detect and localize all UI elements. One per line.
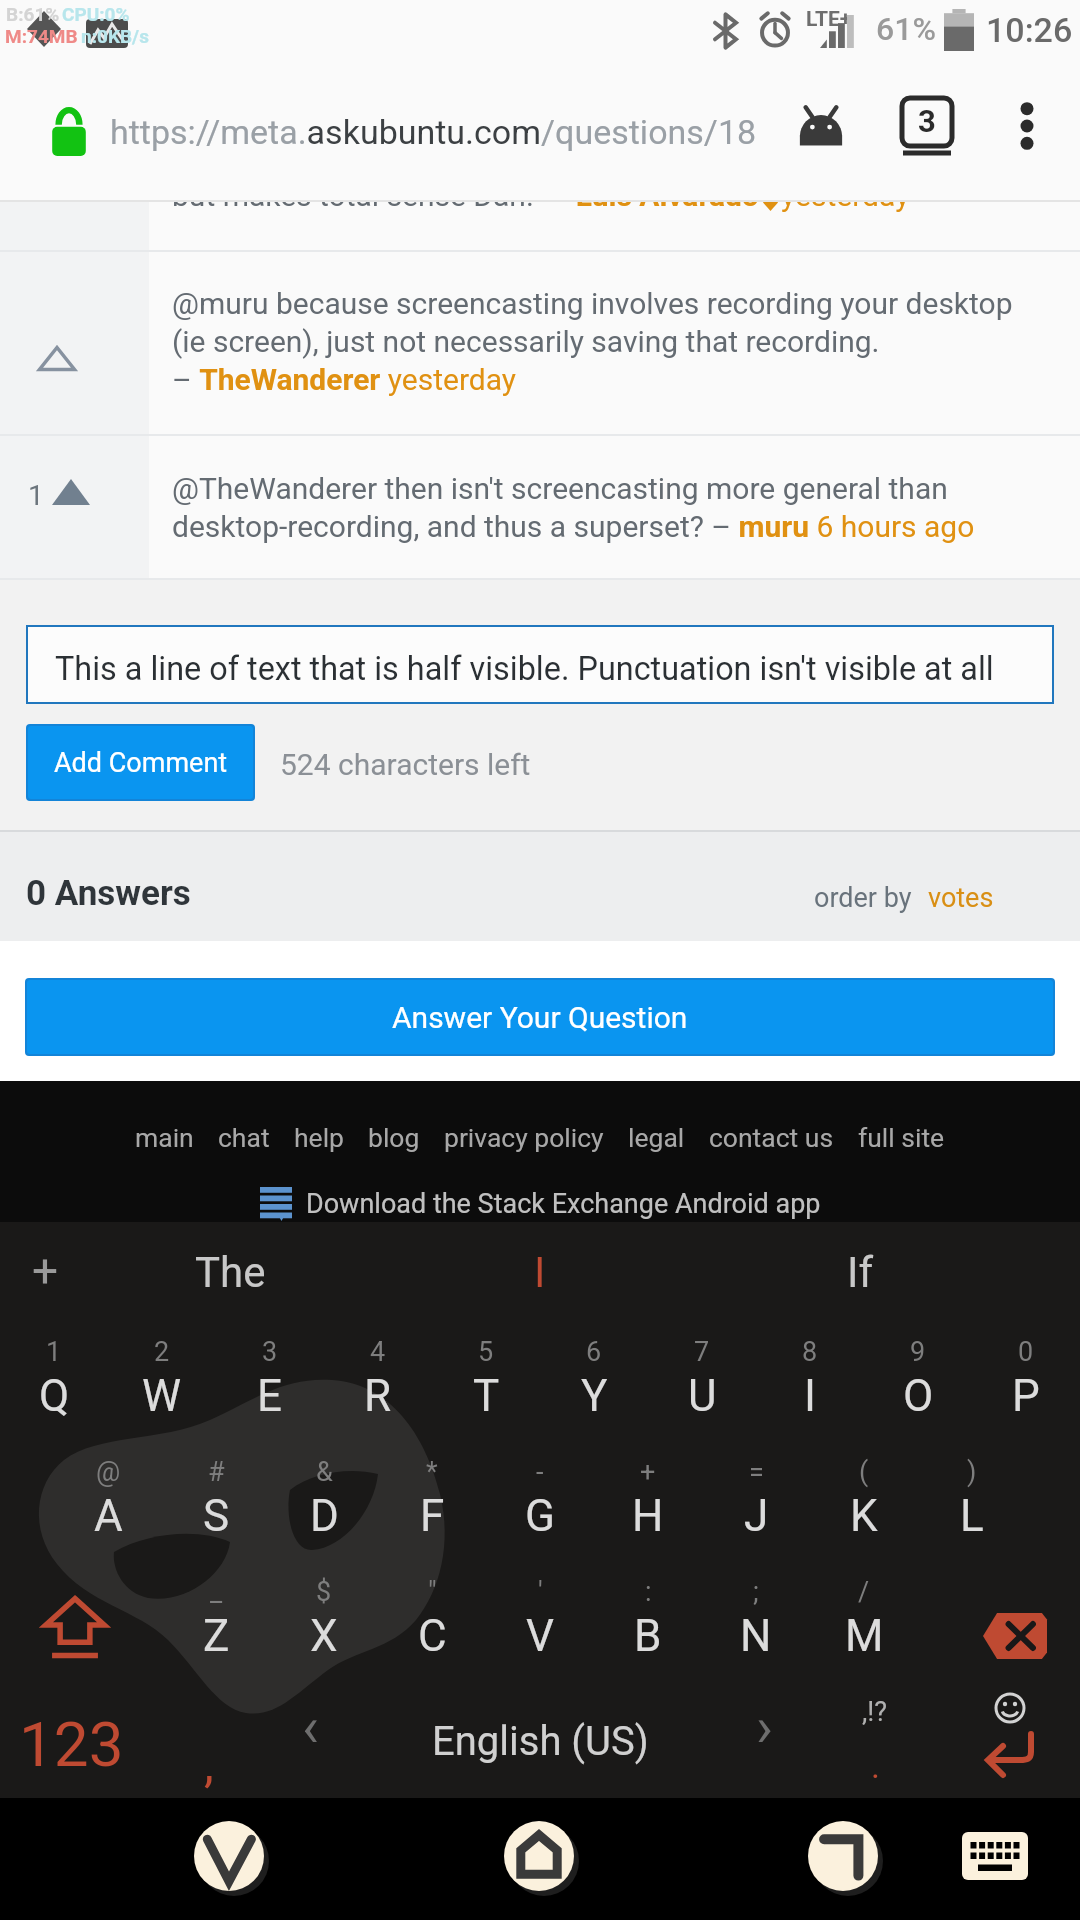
button[interactable]: 1 [0, 1330, 108, 1448]
staticText: I [804, 1370, 816, 1422]
staticText: Answer Your Question [392, 1000, 688, 1035]
staticText: - [536, 1456, 544, 1488]
staticText: K [850, 1490, 878, 1542]
button[interactable]: help [282, 1122, 356, 1153]
staticText: legal [628, 1122, 685, 1153]
button[interactable]: Backspace [945, 1570, 1080, 1688]
button[interactable]: : [594, 1570, 702, 1688]
button[interactable]: Download the Stack Exchange Android app [306, 1188, 821, 1220]
staticText: ( [859, 1456, 869, 1488]
button[interactable]: Tabs [887, 86, 967, 166]
staticText: https://meta.askubuntu.com/questions/18 [110, 112, 770, 152]
button[interactable]: @muru because screencasting involves rec… [0, 251, 1080, 435]
button[interactable]: ,!? [810, 1684, 940, 1798]
staticText: 524 characters left [280, 747, 531, 782]
button[interactable]: Answer Your Question [27, 980, 1053, 1054]
button[interactable]: Add Comment [28, 726, 253, 799]
staticText: ,!? [862, 1696, 888, 1728]
button[interactable]: ; [702, 1570, 810, 1688]
staticText: D [310, 1490, 339, 1542]
button[interactable]: Home [487, 1804, 591, 1908]
button[interactable]: 4 [324, 1330, 432, 1448]
button[interactable]: " [378, 1570, 486, 1688]
button[interactable]: legal [616, 1122, 697, 1153]
staticText: V [526, 1610, 555, 1662]
button[interactable]: - [486, 1450, 594, 1568]
staticText: @muru because screencasting involves rec… [172, 286, 1030, 397]
button[interactable]: = [702, 1450, 810, 1568]
staticText: H [632, 1490, 664, 1542]
button[interactable]: but makes total sense Dan. – Luis Alvara… [0, 202, 1080, 251]
button[interactable]: / [810, 1570, 918, 1688]
staticText: = [749, 1456, 764, 1488]
staticText: F [420, 1490, 445, 1542]
button[interactable]: ' [486, 1570, 594, 1688]
staticText: M:74MB [5, 25, 78, 47]
button[interactable]: More options [987, 86, 1067, 166]
staticText: J [744, 1490, 769, 1542]
button[interactable]: votes [928, 882, 994, 914]
button[interactable]: English (US) [270, 1684, 810, 1798]
button[interactable]: 5 [432, 1330, 540, 1448]
staticText: The [195, 1248, 266, 1297]
button[interactable]: Show keyboard [930, 1820, 1060, 1892]
button[interactable]: chat [206, 1122, 282, 1153]
staticText: + [640, 1456, 656, 1488]
button[interactable]: blog [356, 1122, 432, 1153]
button[interactable]: The [120, 1232, 340, 1312]
staticText: M [845, 1610, 884, 1662]
staticText: 6 [586, 1336, 602, 1368]
button[interactable]: Enter [960, 1684, 1080, 1798]
button[interactable]: 8 [756, 1330, 864, 1448]
button[interactable]: ( [810, 1450, 918, 1568]
staticText: I [534, 1248, 546, 1297]
button[interactable]: @ [54, 1450, 162, 1568]
button[interactable]: 3 [216, 1330, 324, 1448]
button[interactable]: main [123, 1122, 206, 1153]
button[interactable]: _ [162, 1570, 270, 1688]
button[interactable]: Android app [781, 88, 861, 168]
staticText: $ [316, 1576, 332, 1608]
staticText: This a line of text that is half visible… [55, 650, 994, 682]
button[interactable]: If [770, 1232, 950, 1312]
button[interactable]: , [152, 1684, 262, 1798]
button[interactable]: full site [846, 1122, 957, 1153]
staticText: E [257, 1370, 283, 1422]
button[interactable]: * [378, 1450, 486, 1568]
button[interactable]: I [450, 1232, 630, 1312]
staticText: S [203, 1490, 230, 1542]
staticText: n:0KB/s [81, 25, 149, 47]
button[interactable]: contact us [697, 1122, 846, 1153]
button[interactable]: 7 [648, 1330, 756, 1448]
button[interactable]: 0 [972, 1330, 1080, 1448]
button[interactable]: privacy policy [432, 1122, 616, 1153]
staticText: # [208, 1456, 225, 1488]
button[interactable]: 6 [540, 1330, 648, 1448]
button[interactable]: Recents [791, 1804, 895, 1908]
staticText: @ [96, 1456, 121, 1488]
button[interactable]: This a line of text that is half visible… [26, 625, 1054, 704]
staticText: Z [203, 1610, 230, 1662]
button[interactable]: # [162, 1450, 270, 1568]
button[interactable]: Shift [0, 1570, 150, 1688]
staticText: privacy policy [444, 1122, 604, 1153]
staticText: 1 [28, 479, 44, 512]
button[interactable]: + [594, 1450, 702, 1568]
button[interactable]: 2 [108, 1330, 216, 1448]
button[interactable]: & [270, 1450, 378, 1568]
staticText: * [426, 1456, 438, 1488]
button[interactable]: ) [918, 1450, 1026, 1568]
staticText: 9 [910, 1336, 926, 1368]
button[interactable]: $ [270, 1570, 378, 1688]
button[interactable]: 1 [0, 435, 1080, 580]
button[interactable]: Back [177, 1804, 281, 1908]
staticText: 10:26 [986, 10, 1073, 50]
staticText: full site [858, 1122, 945, 1153]
staticText: T [473, 1370, 500, 1422]
staticText: contact us [709, 1122, 834, 1153]
staticText: G [525, 1490, 555, 1542]
staticText: N [740, 1610, 772, 1662]
staticText: ‹ [302, 1694, 319, 1760]
button[interactable]: 123 [0, 1684, 145, 1798]
button[interactable]: 9 [864, 1330, 972, 1448]
